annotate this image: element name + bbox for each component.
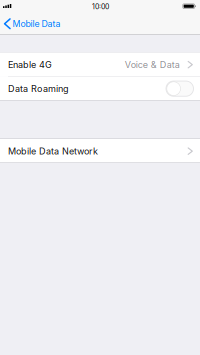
staticText: Mobile Data Network <box>8 146 98 157</box>
staticText: Enable 4G <box>8 59 52 70</box>
button[interactable]: Mobile Data Network <box>0 139 200 162</box>
button[interactable]: Enable 4G <box>0 52 200 76</box>
staticText: Data Roaming <box>8 83 69 94</box>
staticText: 10:00 <box>92 3 109 11</box>
button[interactable]: Mobile Data <box>0 18 65 31</box>
staticText: Voice & Data <box>125 59 180 70</box>
staticText: Mobile Data <box>12 18 60 29</box>
button[interactable]: Data Roaming <box>0 76 200 100</box>
